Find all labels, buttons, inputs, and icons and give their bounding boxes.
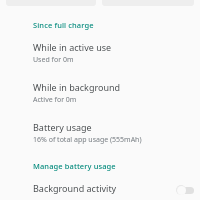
button[interactable]: Background activity	[0, 180, 200, 200]
staticText: Battery usage	[33, 121, 92, 133]
staticText: Since full charge	[33, 20, 94, 30]
button[interactable]: While in active use	[0, 39, 200, 67]
staticText: Manage battery usage	[33, 161, 116, 171]
button[interactable]: While in background	[0, 79, 200, 107]
staticText: Background activity	[33, 182, 117, 194]
staticText: Active for 0m	[33, 95, 77, 105]
staticText: While in active use	[33, 41, 112, 53]
button[interactable]: Battery usage	[0, 119, 200, 147]
staticText: Used for 0m	[33, 55, 74, 65]
button[interactable]: Background activity toggle, off	[176, 183, 196, 197]
staticText: While in background	[33, 81, 121, 93]
staticText: 16% of total app usage (555mAh)	[33, 135, 142, 145]
